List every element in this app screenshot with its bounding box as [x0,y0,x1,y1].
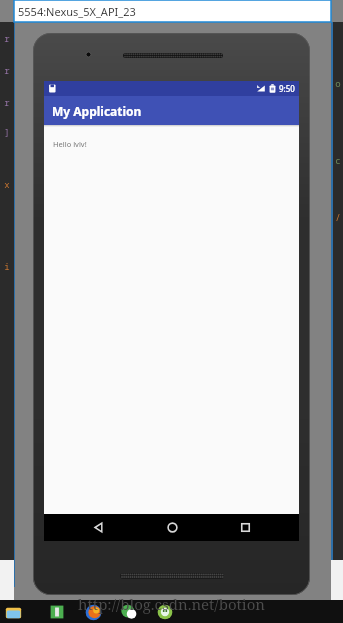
staticText: r [0,96,14,108]
staticText: 9:50 [279,83,295,94]
staticText: o [333,77,343,89]
button[interactable]: Android Studio [46,601,68,623]
button[interactable]: Firefox [82,601,104,623]
staticText: ] [0,126,14,138]
staticText: c [333,154,343,166]
button[interactable]: File Explorer [2,601,24,623]
button[interactable]: Back [78,514,118,541]
button[interactable]: Android emulator [154,601,176,623]
button[interactable]: My Application [44,96,299,125]
button[interactable]: WeChat [118,601,140,623]
staticText: r [0,64,14,76]
staticText: 5554:Nexus_5X_API_23 [18,4,136,19]
staticText: Hello lvlv! [53,139,87,149]
button[interactable]: Recent apps [225,514,265,541]
staticText: r [0,32,14,44]
staticText: i [0,260,14,272]
staticText: x [0,178,14,190]
button[interactable]: Home [152,514,192,541]
staticText: My Application [52,103,142,119]
staticText: / [333,211,343,223]
staticText: http://blog.csdn.net/botion [0,594,343,614]
